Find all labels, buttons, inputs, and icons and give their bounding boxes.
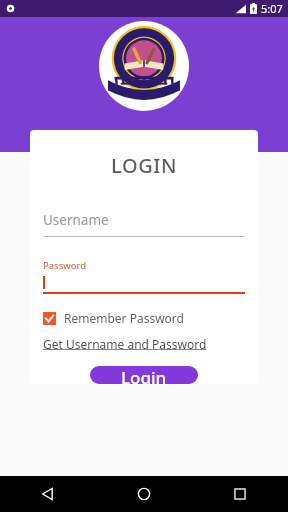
button[interactable]: Login <box>90 366 198 384</box>
button[interactable]: Username <box>43 211 245 237</box>
button[interactable]: Home <box>96 476 192 512</box>
button[interactable]: Recent apps <box>192 476 288 512</box>
staticText: Username <box>43 211 109 229</box>
staticText: LOGIN <box>111 152 178 179</box>
button[interactable]: Back <box>0 476 96 512</box>
staticText: Get Username and Password <box>43 336 207 352</box>
button[interactable]: Password <box>43 259 245 294</box>
button[interactable]: Get Username and Password <box>43 336 207 352</box>
staticText: Remember Password <box>64 310 184 326</box>
staticText: Login <box>121 366 167 384</box>
button[interactable]: Remember Password <box>43 310 184 326</box>
staticText: Password <box>43 259 86 272</box>
staticText: 5:07 <box>261 1 283 16</box>
